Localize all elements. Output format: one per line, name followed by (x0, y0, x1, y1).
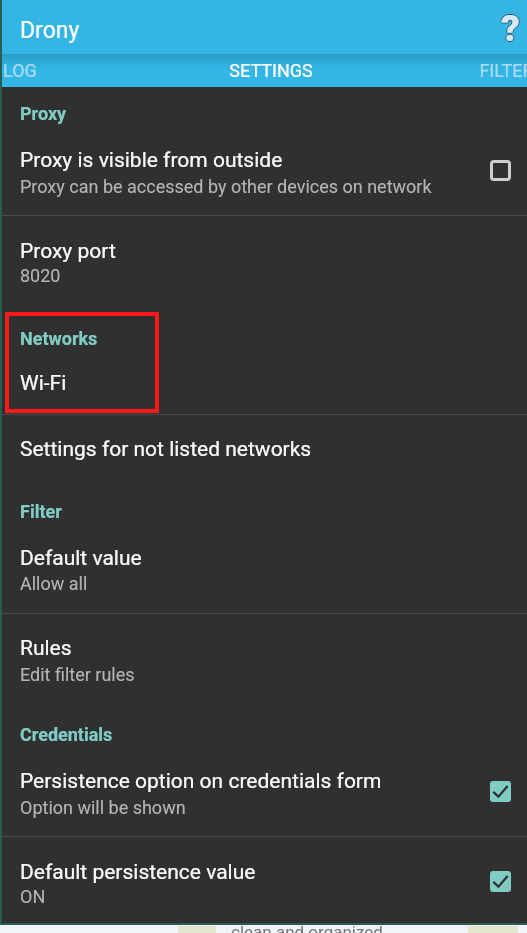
staticText: Proxy can be accessed by other devices o… (20, 176, 432, 197)
button[interactable] (0, 355, 527, 414)
staticText: Option will be shown (20, 797, 186, 818)
button[interactable] (0, 753, 527, 836)
staticText: Proxy (20, 103, 67, 124)
staticText: FILTER (479, 60, 527, 81)
button[interactable]: LOG (0, 54, 145, 87)
staticText: LOG (3, 60, 37, 81)
button[interactable]: Disabled, checkbox (478, 148, 522, 192)
staticText: Settings for not listed networks (20, 437, 312, 462)
staticText: Credentials (20, 724, 113, 745)
staticText: SETTINGS (229, 60, 313, 81)
staticText: ON (20, 886, 46, 907)
staticText: Allow all (20, 573, 88, 594)
staticText: Proxy is visible from outside (20, 148, 283, 173)
staticText: Rules (20, 636, 72, 661)
button[interactable] (0, 837, 527, 919)
staticText: ? (502, 7, 521, 47)
button[interactable] (0, 131, 527, 214)
staticText: Wi-Fi (20, 371, 67, 396)
staticText: Drony (20, 17, 80, 44)
staticText: Persistence option on credentials form (20, 769, 382, 794)
button[interactable] (0, 530, 527, 613)
staticText: 8020 (20, 265, 61, 286)
button[interactable]: Help (486, 0, 527, 54)
button[interactable]: FILTER (396, 54, 527, 87)
button[interactable] (0, 415, 527, 481)
button[interactable] (0, 216, 527, 298)
staticText: ? (501, 7, 520, 47)
button[interactable] (0, 614, 527, 696)
staticText: ? (501, 8, 520, 48)
staticText: Default persistence value (20, 860, 256, 885)
staticText: ? (501, 6, 520, 46)
staticText: Edit filter rules (20, 664, 135, 685)
button[interactable]: Enabled, checkbox (478, 769, 522, 813)
staticText: Networks (20, 328, 98, 349)
button[interactable]: SETTINGS (145, 54, 396, 87)
staticText: Filter (20, 501, 62, 522)
staticText: clean and organized (231, 922, 383, 933)
staticText: ? (500, 7, 519, 47)
staticText: Default value (20, 546, 142, 571)
staticText: Proxy port (20, 239, 116, 264)
button[interactable]: Enabled, checkbox (478, 859, 522, 903)
